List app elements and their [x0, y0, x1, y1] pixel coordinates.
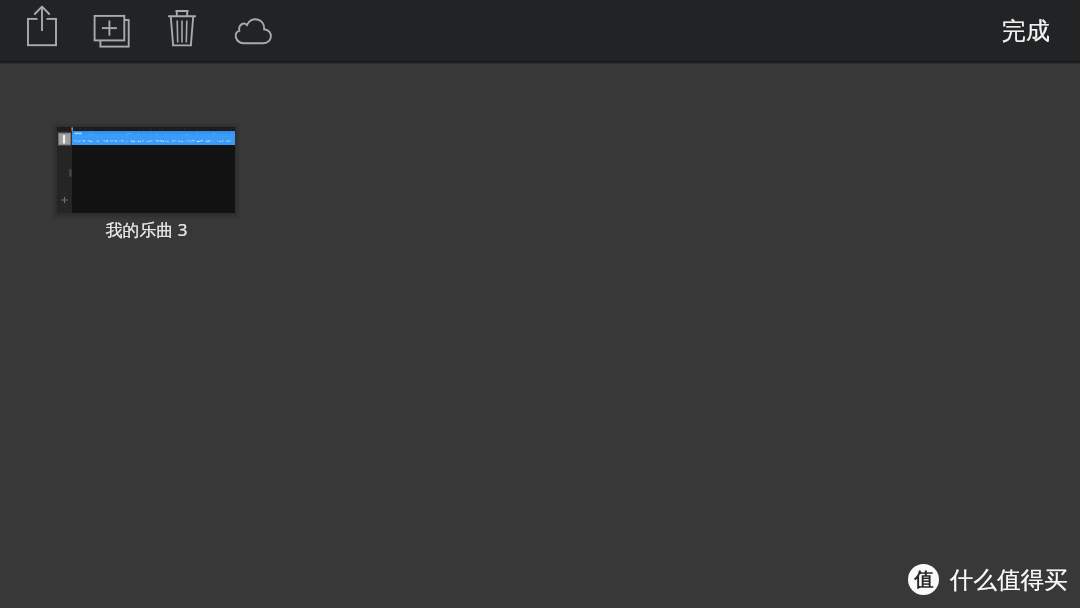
- button[interactable]: Share: [14, 0, 74, 62]
- button[interactable]: 完成: [994, 10, 1058, 52]
- button[interactable]: 我的乐曲 3: [57, 127, 235, 213]
- button[interactable]: Duplicate: [84, 0, 144, 62]
- button[interactable]: Delete: [154, 0, 210, 62]
- staticText: 值: [914, 568, 933, 592]
- staticText: 我的乐曲 3: [105, 218, 188, 241]
- button[interactable]: iCloud: [232, 2, 288, 62]
- staticText: 什么值得买: [950, 565, 1068, 595]
- staticText: 完成: [1002, 16, 1050, 46]
